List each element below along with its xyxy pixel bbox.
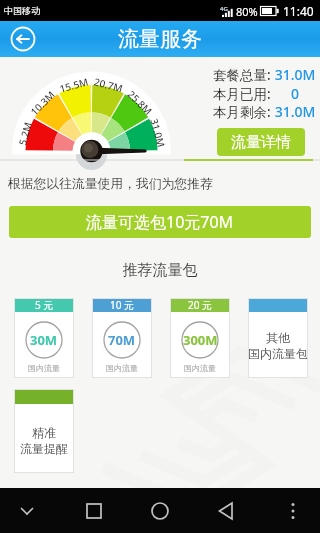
staticText: 11:40 — [283, 3, 314, 19]
staticText: 套餐总量: — [213, 66, 271, 84]
staticText: 5 元 — [35, 298, 54, 312]
staticText: 本月已用: — [213, 85, 271, 103]
button[interactable]: More options — [276, 494, 310, 528]
staticText: 31.0M — [274, 102, 316, 121]
staticText: 4G — [220, 5, 228, 13]
staticText: 国内流量包 — [248, 346, 308, 361]
staticText: 国内流量 — [106, 363, 138, 373]
staticText: 其他 — [266, 330, 290, 345]
button[interactable]: 10 元 — [92, 298, 152, 378]
staticText: 31.0M — [149, 117, 169, 149]
staticText: 31.0M — [274, 65, 316, 84]
staticText: 80% — [236, 4, 258, 19]
staticText: 流量服务 — [118, 26, 202, 52]
staticText: 流量详情 — [231, 133, 291, 152]
staticText: 精准 — [32, 425, 56, 440]
staticText: 本月剩余: — [213, 103, 271, 121]
button[interactable]: Hide keyboard — [10, 494, 44, 528]
staticText: 300M — [183, 331, 218, 349]
staticText: 推荐流量包 — [0, 261, 320, 280]
staticText: 25.8M — [126, 87, 156, 117]
button[interactable]: 流量详情 — [217, 128, 305, 156]
button[interactable]: 流量可选包10元70M — [9, 206, 311, 238]
staticText: 30M — [30, 331, 58, 349]
staticText: 15.5M — [58, 74, 90, 94]
button[interactable]: Recents — [77, 494, 111, 528]
button[interactable]: Back — [210, 494, 244, 528]
staticText: 10 元 — [110, 298, 135, 312]
staticText: 5.2M — [15, 120, 33, 146]
button[interactable]: 5 元 — [14, 298, 74, 378]
staticText: 20 元 — [188, 298, 213, 312]
button[interactable]: Back — [10, 26, 36, 52]
button[interactable]: 其他 — [248, 298, 308, 378]
staticText: 国内流量 — [184, 363, 216, 373]
staticText: 70M — [108, 331, 136, 349]
staticText: 流量可选包10元70M — [86, 211, 234, 233]
staticText: 10.3M — [27, 87, 57, 117]
staticText: 国内流量 — [28, 363, 60, 373]
button[interactable]: 精准 — [14, 389, 74, 473]
staticText: 中国移动 — [4, 5, 40, 16]
staticText: 0 — [274, 84, 316, 103]
staticText: 根据您以往流量使用，我们为您推荐 — [8, 176, 213, 192]
button[interactable]: Home — [143, 494, 177, 528]
button[interactable]: 20 元 — [170, 298, 230, 378]
staticText: 20.7M — [93, 74, 125, 94]
staticText: 流量提醒 — [20, 441, 68, 456]
